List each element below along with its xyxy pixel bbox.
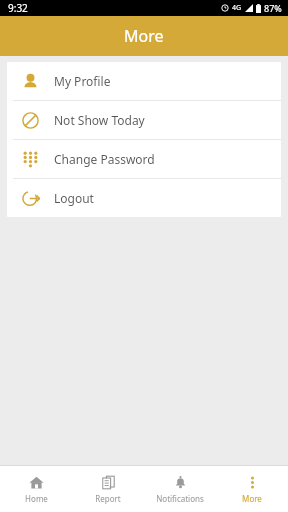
staticText: Report: [95, 493, 121, 504]
staticText: Logout: [54, 190, 94, 206]
staticText: 4G: [232, 3, 242, 13]
button[interactable]: Home: [0, 466, 72, 512]
button[interactable]: My Profile: [7, 62, 281, 100]
staticText: Change Password: [54, 151, 155, 167]
staticText: 87%: [264, 2, 282, 14]
staticText: More: [242, 493, 262, 504]
button[interactable]: Report: [72, 466, 144, 512]
staticText: Notifications: [156, 493, 204, 504]
button[interactable]: Logout: [7, 179, 281, 217]
button[interactable]: Change Password: [7, 140, 281, 178]
staticText: My Profile: [54, 73, 111, 89]
staticText: 9:32: [8, 1, 28, 15]
staticText: Home: [25, 493, 48, 504]
button[interactable]: Not Show Today: [7, 101, 281, 139]
staticText: More: [124, 25, 164, 47]
staticText: Not Show Today: [54, 112, 145, 128]
button[interactable]: Notifications: [144, 466, 216, 512]
button[interactable]: More: [216, 466, 288, 512]
